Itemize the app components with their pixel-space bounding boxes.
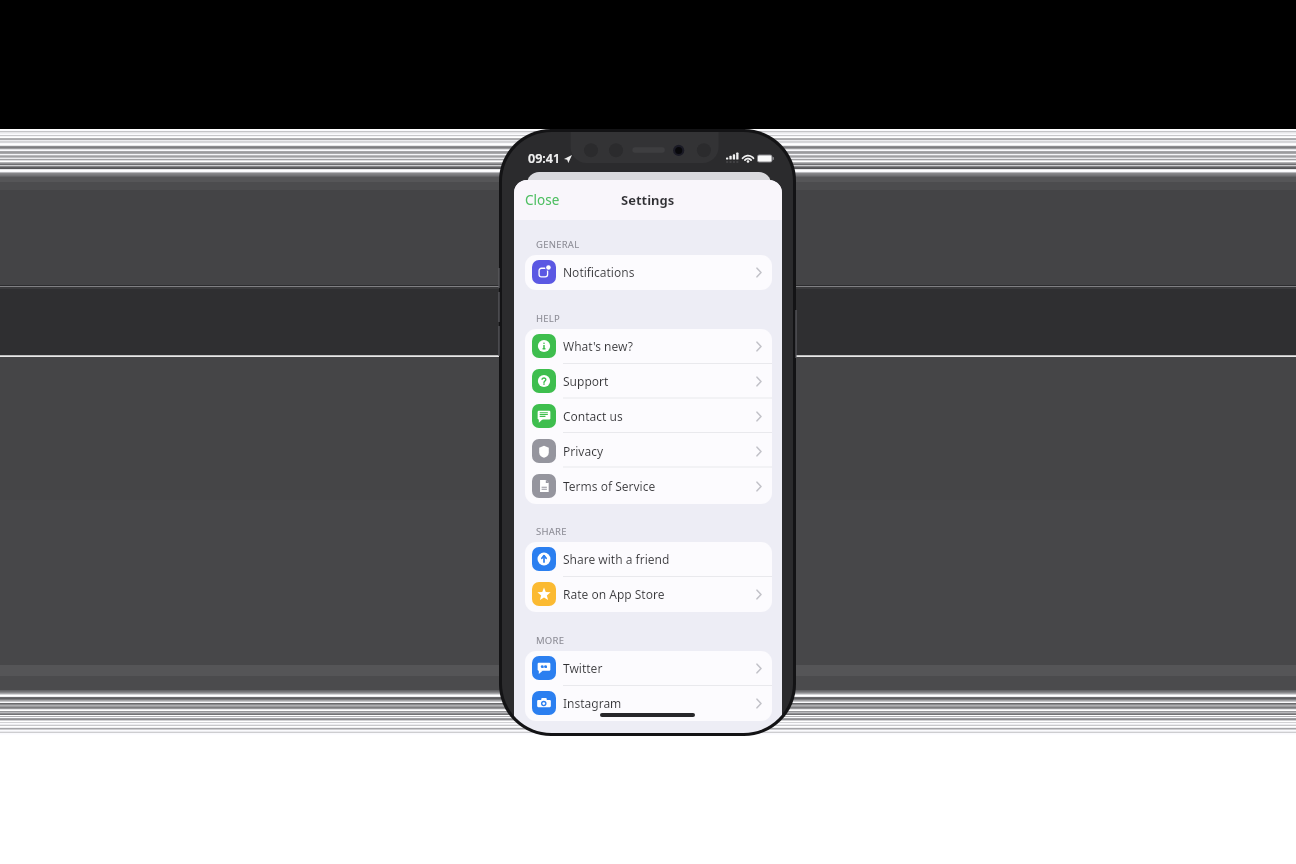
button[interactable]: Contact us	[525, 399, 772, 434]
button[interactable]: Twitter	[525, 651, 772, 686]
staticText: Rate on App Store	[563, 586, 665, 602]
staticText: Privacy	[563, 443, 604, 459]
staticText: Settings	[621, 191, 675, 209]
button[interactable]: Support	[525, 364, 772, 399]
staticText: What's new?	[563, 338, 633, 354]
button[interactable]: Rate on App Store	[525, 577, 772, 612]
staticText: MORE	[536, 634, 565, 647]
staticText: Twitter	[563, 660, 603, 676]
staticText: GENERAL	[536, 238, 580, 251]
staticText: HELP	[536, 312, 561, 325]
staticText: 09:41	[528, 150, 561, 167]
button[interactable]: Close	[514, 184, 571, 216]
button[interactable]: Share with a friend	[525, 542, 772, 577]
staticText: Notifications	[563, 264, 635, 280]
staticText: Terms of Service	[563, 478, 656, 494]
staticText: Close	[525, 191, 560, 209]
button[interactable]: Notifications	[525, 255, 772, 290]
button[interactable]: What's new?	[525, 329, 772, 364]
staticText: Share with a friend	[563, 551, 670, 567]
staticText: Support	[563, 373, 609, 389]
button[interactable]: Terms of Service	[525, 469, 772, 504]
staticText: SHARE	[536, 525, 567, 538]
button[interactable]: Privacy	[525, 434, 772, 469]
staticText: Instagram	[563, 695, 622, 711]
button[interactable]: Instagram	[525, 686, 772, 721]
staticText: Contact us	[563, 408, 623, 424]
